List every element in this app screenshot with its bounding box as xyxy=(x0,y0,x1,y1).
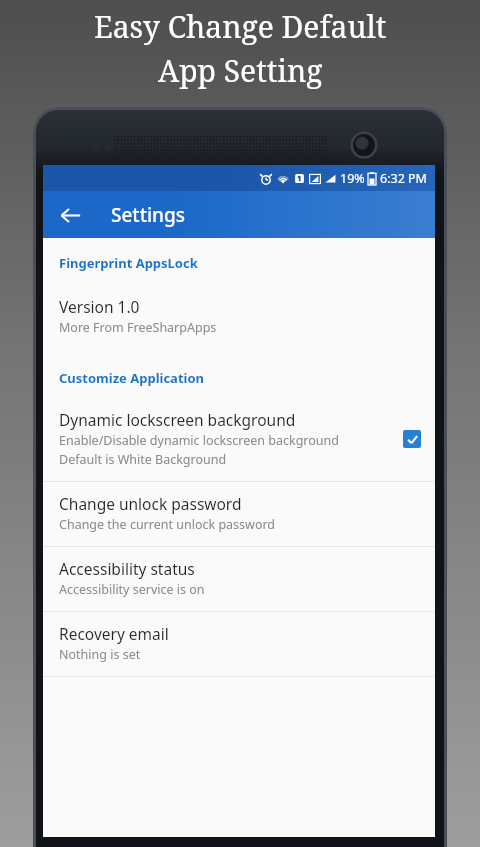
staticText: Accessibility status xyxy=(59,558,195,579)
staticText: Settings xyxy=(111,202,185,228)
staticText: Fingerprint AppsLock xyxy=(59,254,198,272)
button[interactable]: Recovery email xyxy=(43,612,435,677)
staticText: App Setting xyxy=(158,50,323,91)
button[interactable]: Version 1.0 xyxy=(43,285,435,349)
staticText: 6:32 PM xyxy=(380,170,427,187)
staticText: Change the current unlock password xyxy=(59,516,276,533)
button[interactable]: Dynamic lockscreen background enabled xyxy=(403,430,421,448)
button[interactable]: Change unlock password xyxy=(43,482,435,547)
button[interactable]: Accessibility status xyxy=(43,547,435,612)
button[interactable]: Dynamic lockscreen background xyxy=(43,398,435,482)
staticText: Change unlock password xyxy=(59,493,242,514)
staticText: Dynamic lockscreen background xyxy=(59,409,296,430)
staticText: Recovery email xyxy=(59,623,169,644)
staticText: Accessibility service is on xyxy=(59,581,205,598)
staticText: Version 1.0 xyxy=(59,296,140,317)
staticText: Default is White Background xyxy=(59,451,227,468)
staticText: Customize Application xyxy=(59,369,204,387)
staticText: More From FreeSharpApps xyxy=(59,319,217,336)
staticText: Easy Change Default xyxy=(94,6,387,47)
staticText: Enable/Disable dynamic lockscreen backgr… xyxy=(59,432,339,449)
staticText: 19% xyxy=(340,170,365,187)
staticText: Nothing is set xyxy=(59,646,141,663)
button[interactable]: Back xyxy=(50,195,90,235)
